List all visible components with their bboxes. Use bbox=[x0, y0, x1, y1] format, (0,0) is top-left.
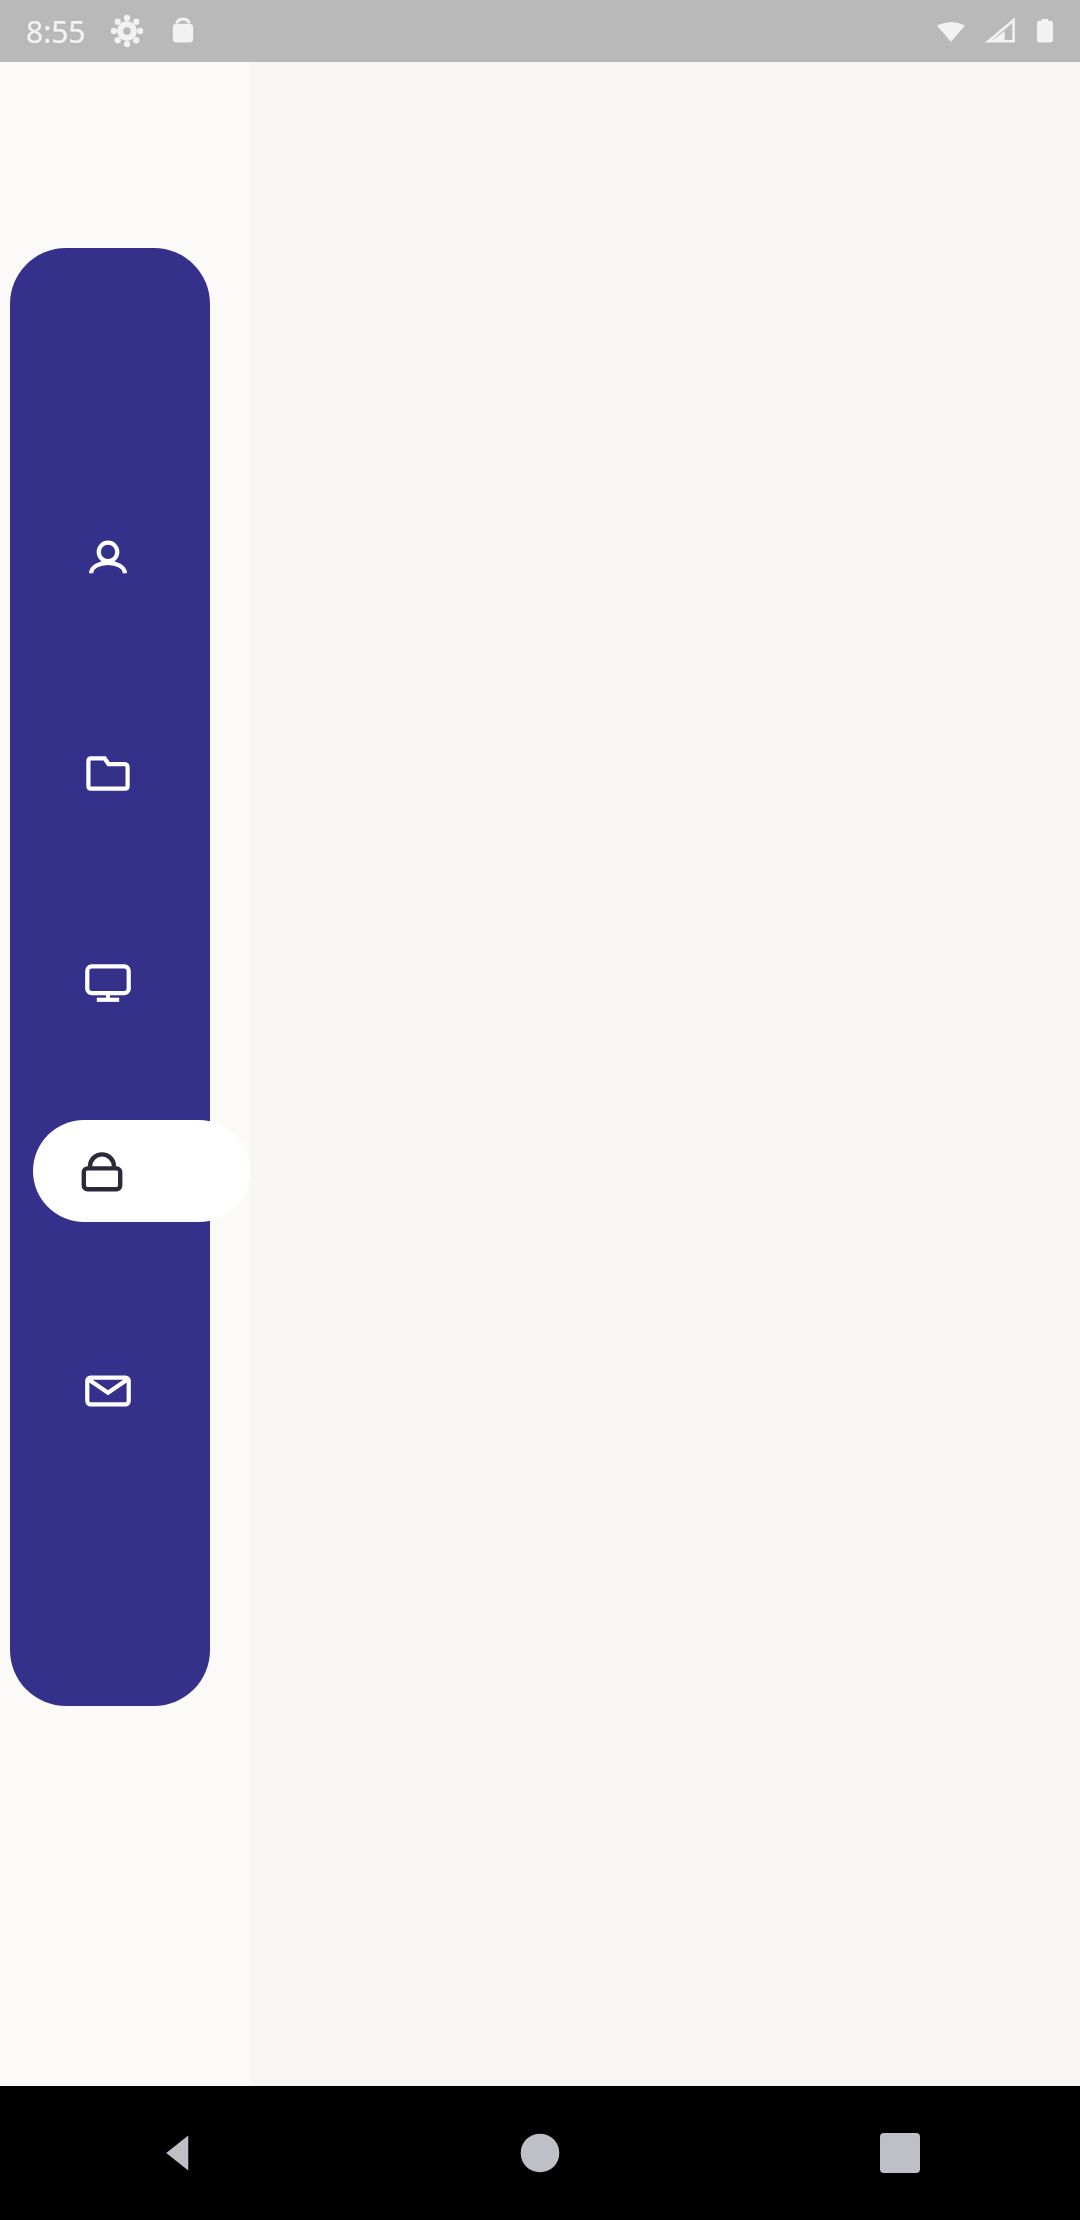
button[interactable]: Back bbox=[0, 2086, 360, 2220]
staticText: 8:55 bbox=[26, 11, 86, 52]
button[interactable]: Profile bbox=[10, 511, 210, 613]
button[interactable]: Mail bbox=[10, 1340, 210, 1442]
button[interactable]: Security, selected bbox=[33, 1120, 250, 1222]
button[interactable]: Devices bbox=[10, 931, 210, 1033]
button[interactable]: Home bbox=[360, 2086, 720, 2220]
button[interactable]: Files bbox=[10, 722, 210, 824]
button[interactable]: Recents bbox=[720, 2086, 1080, 2220]
